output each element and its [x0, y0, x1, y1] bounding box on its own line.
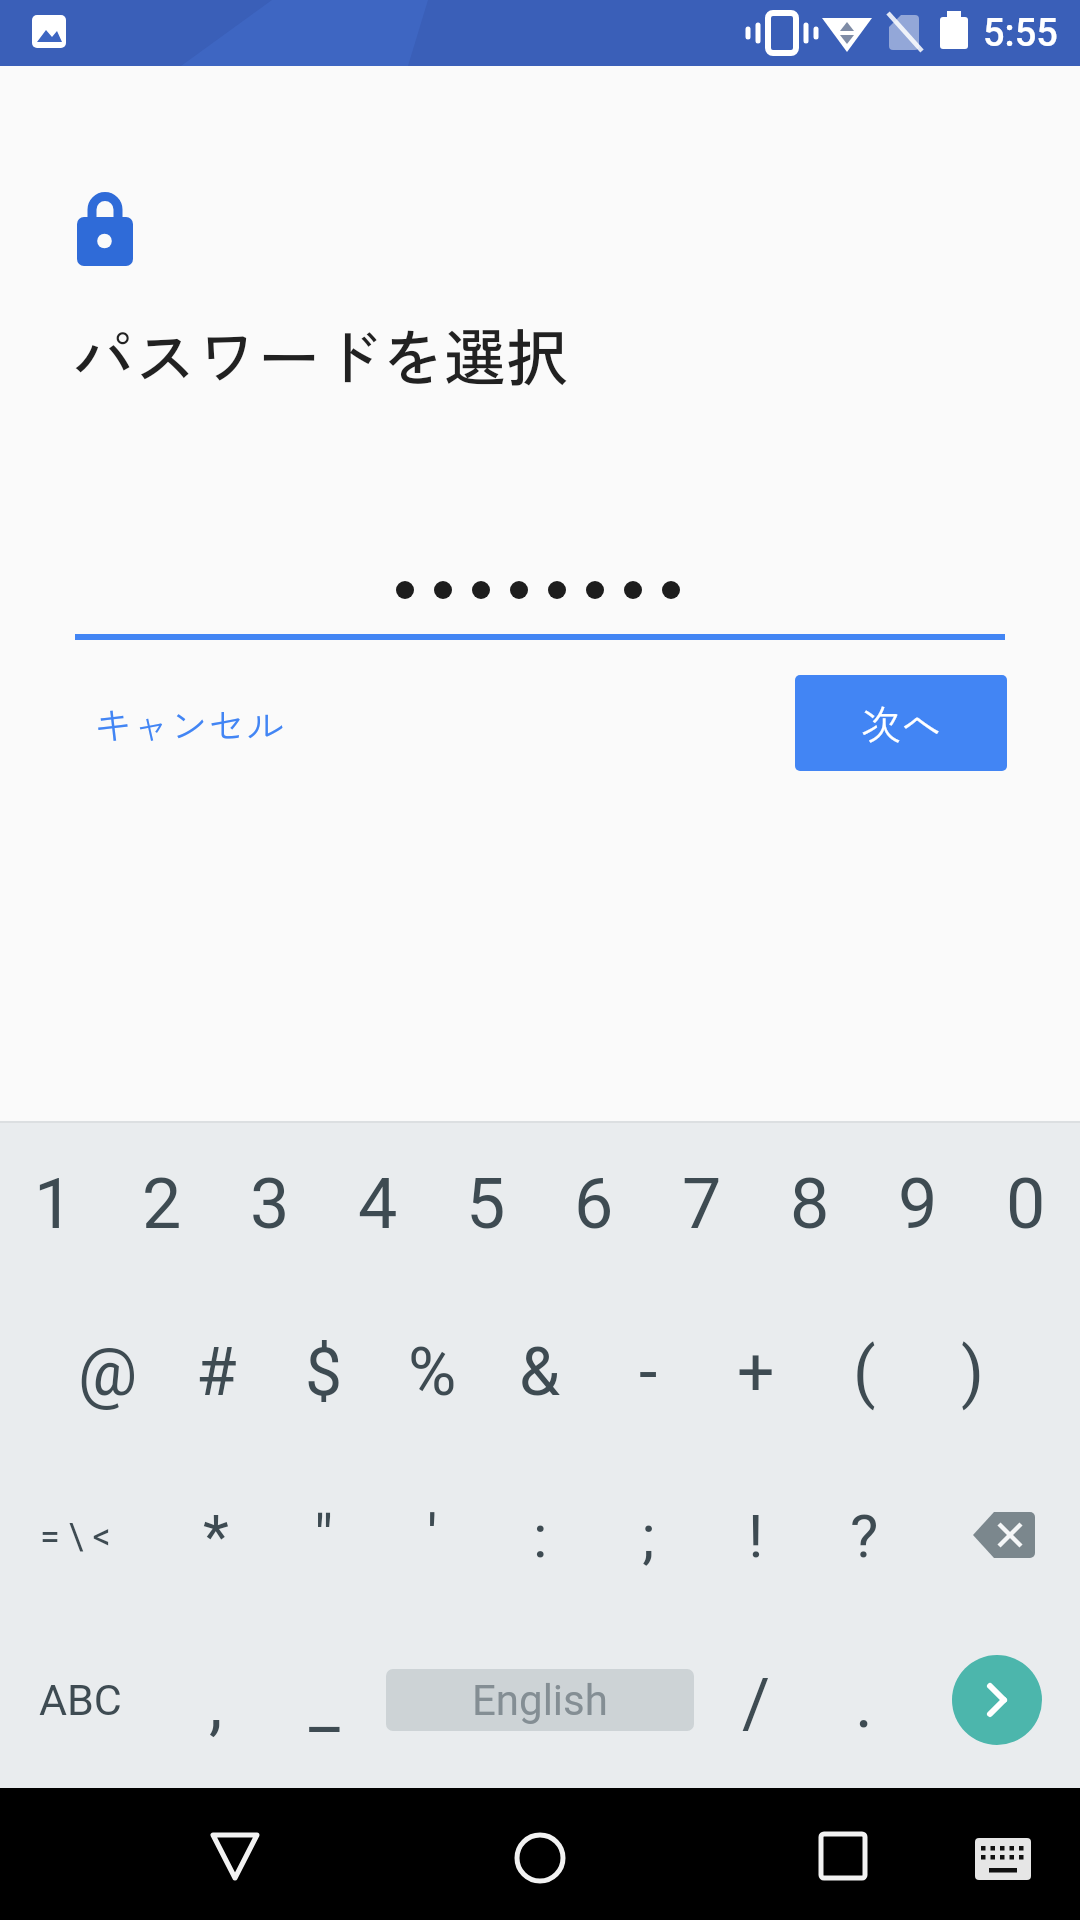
button[interactable]: ( — [814, 1302, 914, 1442]
button[interactable]: ' — [382, 1466, 482, 1606]
staticText: ) — [961, 1334, 984, 1411]
button[interactable]: 1 — [4, 1134, 104, 1274]
button[interactable]: 7 — [652, 1134, 752, 1274]
button[interactable] — [186, 1792, 286, 1916]
button[interactable]: # — [166, 1302, 266, 1442]
staticText: ? — [850, 1501, 879, 1571]
staticText: # — [196, 1334, 237, 1411]
button[interactable]: " — [274, 1466, 374, 1606]
staticText: : — [533, 1501, 548, 1571]
staticText: = \ < — [40, 1516, 111, 1558]
staticText: / — [742, 1664, 771, 1744]
staticText: 0 — [1006, 1163, 1046, 1245]
button[interactable]: 3 — [220, 1134, 320, 1274]
button[interactable]: ) — [922, 1302, 1022, 1442]
button[interactable]: . — [814, 1634, 914, 1774]
button[interactable]: ABC — [20, 1640, 140, 1760]
button[interactable]: 0 — [976, 1134, 1076, 1274]
staticText: . — [855, 1664, 873, 1744]
button[interactable]: - — [598, 1302, 698, 1442]
staticText: キャンセル — [94, 696, 285, 751]
staticText: & — [519, 1334, 561, 1411]
staticText: パスワードを選択 — [72, 309, 569, 399]
staticText: 4 — [358, 1163, 398, 1245]
staticText: $ — [305, 1334, 343, 1411]
button[interactable]: , — [166, 1634, 266, 1774]
staticText: ! — [748, 1501, 764, 1571]
staticText: ; — [642, 1501, 655, 1571]
button[interactable] — [793, 1792, 893, 1916]
button[interactable]: @ — [58, 1302, 158, 1442]
button[interactable]: 9 — [868, 1134, 968, 1274]
button[interactable]: * — [166, 1466, 266, 1606]
button[interactable]: English — [386, 1669, 694, 1731]
button[interactable]: 4 — [328, 1134, 428, 1274]
button[interactable]: キャンセル — [94, 695, 354, 751]
staticText: 9 — [898, 1163, 938, 1245]
button[interactable]: $ — [274, 1302, 374, 1442]
button[interactable]: / — [706, 1634, 806, 1774]
button[interactable]: _ — [274, 1634, 374, 1774]
staticText: 1 — [34, 1163, 74, 1245]
staticText: 5:55 — [983, 11, 1058, 56]
staticText: 6 — [574, 1163, 614, 1245]
button[interactable]: ! — [706, 1466, 806, 1606]
staticText: 3 — [250, 1163, 290, 1245]
staticText: " — [314, 1501, 334, 1571]
staticText: 7 — [682, 1163, 722, 1245]
button[interactable]: 8 — [760, 1134, 860, 1274]
staticText: ' — [427, 1501, 438, 1571]
button[interactable] — [490, 1792, 590, 1916]
staticText: + — [737, 1334, 775, 1411]
button[interactable]: ; — [598, 1466, 698, 1606]
staticText: 次へ — [861, 694, 941, 752]
staticText: ABC — [39, 1675, 122, 1725]
button[interactable]: + — [706, 1302, 806, 1442]
staticText: 8 — [790, 1163, 830, 1245]
button[interactable] — [952, 1655, 1042, 1745]
button[interactable]: 6 — [544, 1134, 644, 1274]
staticText: * — [203, 1501, 229, 1571]
staticText: English — [472, 1676, 608, 1725]
staticText: @ — [78, 1334, 138, 1411]
button[interactable]: ? — [814, 1466, 914, 1606]
button[interactable]: 5 — [436, 1134, 536, 1274]
button[interactable]: 次へ — [795, 675, 1007, 771]
button[interactable]: 2 — [112, 1134, 212, 1274]
button[interactable]: : — [490, 1466, 590, 1606]
staticText: 2 — [142, 1163, 182, 1245]
staticText: _ — [309, 1664, 340, 1744]
staticText: % — [408, 1334, 457, 1411]
button[interactable]: & — [490, 1302, 590, 1442]
button[interactable]: % — [382, 1302, 482, 1442]
staticText: 5 — [466, 1163, 506, 1245]
staticText: - — [639, 1334, 658, 1411]
button[interactable] — [958, 1491, 1048, 1581]
staticText: ( — [853, 1334, 876, 1411]
button[interactable] — [953, 1792, 1053, 1916]
staticText: , — [209, 1664, 223, 1744]
button[interactable]: = \ < — [15, 1477, 135, 1597]
